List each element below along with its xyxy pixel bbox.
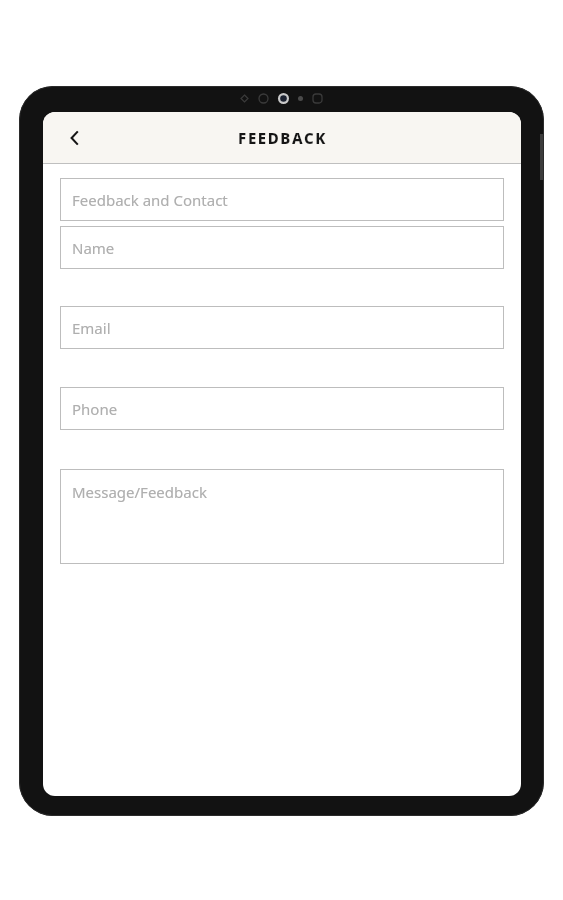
staticText: FEEDBACK bbox=[238, 128, 327, 148]
button[interactable]: Email bbox=[60, 306, 504, 349]
button[interactable]: Name bbox=[60, 226, 504, 269]
button[interactable]: Message/Feedback bbox=[60, 469, 504, 564]
staticText: Phone bbox=[72, 399, 118, 419]
staticText: Name bbox=[72, 238, 115, 258]
staticText: Message/Feedback bbox=[72, 482, 207, 502]
staticText: Feedback and Contact bbox=[72, 190, 228, 210]
button[interactable]: Phone bbox=[60, 387, 504, 430]
button[interactable]: Back bbox=[55, 118, 95, 158]
button[interactable]: Feedback and Contact bbox=[60, 178, 504, 221]
staticText: Email bbox=[72, 318, 111, 338]
